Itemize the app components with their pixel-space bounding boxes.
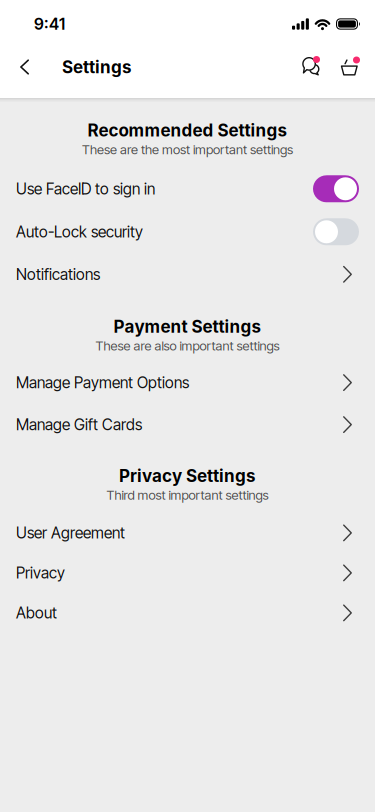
button[interactable]: Auto-Lock security [0,210,375,253]
staticText: User Agreement [16,523,125,542]
staticText: Third most important settings [106,487,268,503]
button[interactable]: Notifications [0,253,375,295]
staticText: These are the most important settings [82,142,293,157]
button[interactable]: About [0,593,375,633]
button[interactable]: Back [0,46,39,88]
staticText: Recommended Settings [87,120,287,141]
staticText: Manage Gift Cards [16,415,142,434]
button[interactable]: Manage Payment Options [0,362,375,404]
button[interactable]: Messages [295,46,329,88]
staticText: Manage Payment Options [16,373,189,392]
staticText: Payment Settings [113,316,261,337]
button[interactable]: Cart [333,46,367,88]
staticText: Notifications [16,265,100,284]
staticText: Auto-Lock security [16,222,143,241]
staticText: Privacy Settings [119,466,256,486]
staticText: Settings [62,57,132,77]
staticText: Use FaceID to sign in [16,179,155,198]
button[interactable]: Manage Gift Cards [0,404,375,446]
button[interactable]: User Agreement [0,513,375,553]
button[interactable]: Privacy [0,553,375,593]
staticText: 9:41 [34,14,65,34]
staticText: About [16,603,57,622]
button[interactable]: Use FaceID to sign in [0,167,375,210]
staticText: Privacy [16,563,65,582]
staticText: These are also important settings [95,338,279,354]
